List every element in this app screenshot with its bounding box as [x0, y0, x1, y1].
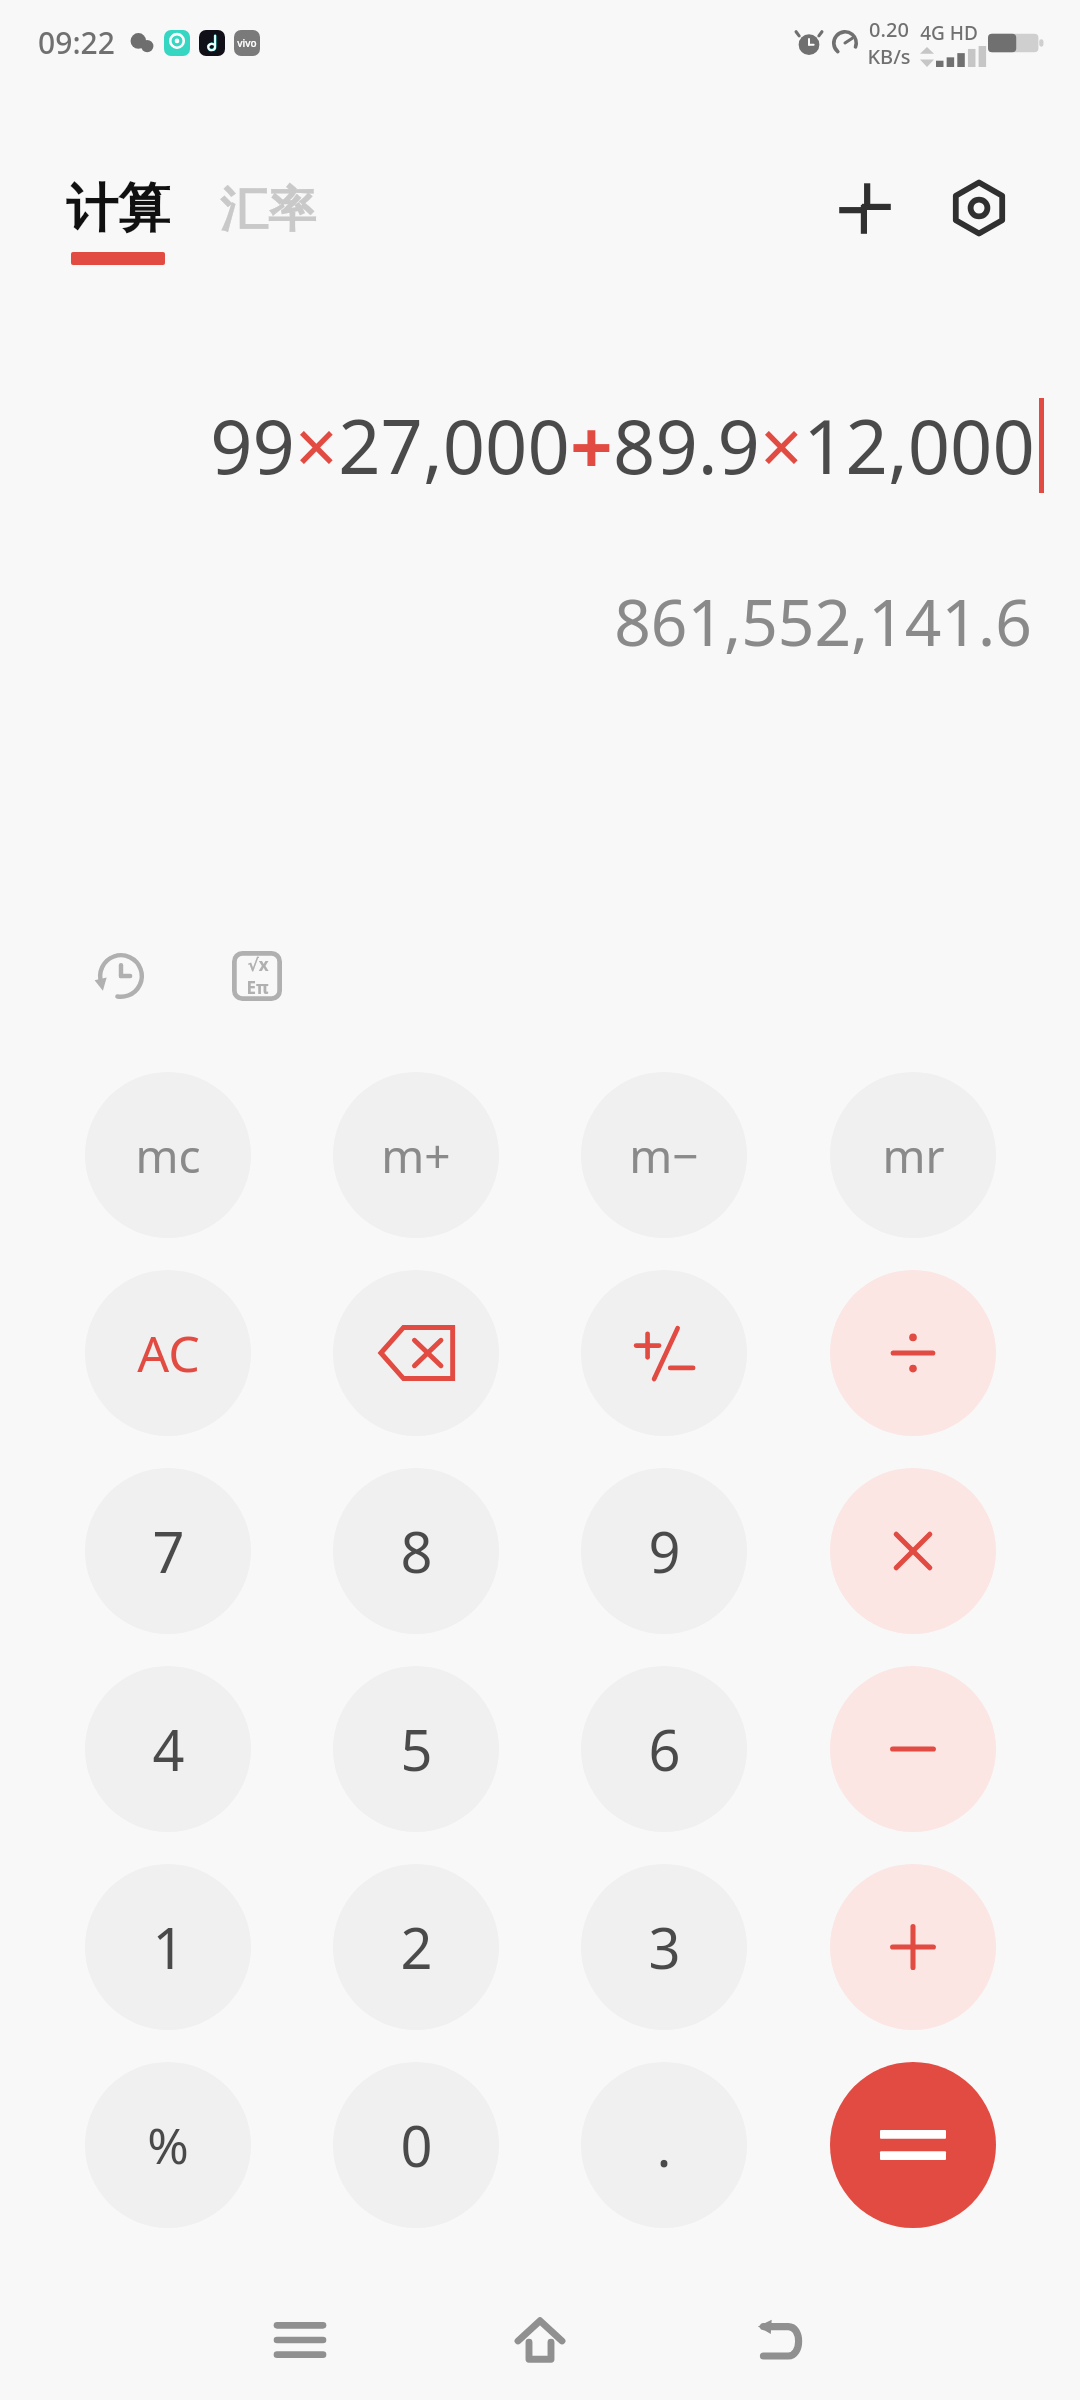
- staticText: 12,000: [803, 395, 1035, 496]
- button[interactable]: Multiply: [830, 1468, 996, 1634]
- staticText: 5: [400, 1711, 433, 1787]
- button[interactable]: Settings: [934, 163, 1024, 253]
- button[interactable]: 0: [333, 2062, 499, 2228]
- staticText: Eπ: [246, 976, 269, 999]
- staticText: 7: [152, 1513, 185, 1589]
- button[interactable]: m+: [333, 1072, 499, 1238]
- staticText: 8: [400, 1513, 433, 1589]
- button[interactable]: 计算: [66, 176, 170, 265]
- button[interactable]: .: [581, 2062, 747, 2228]
- button[interactable]: Backspace: [333, 1270, 499, 1436]
- button[interactable]: %: [85, 2062, 251, 2228]
- button[interactable]: 8: [333, 1468, 499, 1634]
- staticText: 1: [152, 1909, 185, 1985]
- button[interactable]: Subtract: [830, 1666, 996, 1832]
- staticText: 3: [648, 1909, 681, 1985]
- button[interactable]: History: [80, 935, 162, 1017]
- button[interactable]: 3: [581, 1864, 747, 2030]
- button[interactable]: Home: [465, 2285, 615, 2395]
- button[interactable]: Equals: [830, 2062, 996, 2228]
- button[interactable]: 2: [333, 1864, 499, 2030]
- button[interactable]: 汇率: [220, 180, 316, 240]
- staticText: 99: [210, 395, 295, 496]
- button[interactable]: 4: [85, 1666, 251, 1832]
- button[interactable]: mc: [85, 1072, 251, 1238]
- staticText: AC: [137, 1319, 200, 1387]
- staticText: 2: [400, 1909, 433, 1985]
- button[interactable]: Divide: [830, 1270, 996, 1436]
- staticText: √x: [247, 953, 269, 976]
- staticText: 09:22: [38, 22, 115, 63]
- staticText: 861,552,141.6: [614, 578, 1032, 665]
- button[interactable]: 7: [85, 1468, 251, 1634]
- staticText: 9: [648, 1513, 681, 1589]
- staticText: 89.9: [613, 395, 760, 496]
- button[interactable]: Scientific mode: [216, 935, 298, 1017]
- button[interactable]: Back: [705, 2285, 855, 2395]
- staticText: 6: [648, 1711, 681, 1787]
- staticText: KB/s: [867, 43, 911, 70]
- staticText: %: [147, 2111, 189, 2179]
- staticText: mr: [882, 1124, 945, 1187]
- button[interactable]: 1: [85, 1864, 251, 2030]
- button[interactable]: Collapse keypad: [820, 163, 910, 253]
- button[interactable]: Add: [830, 1864, 996, 2030]
- button[interactable]: mr: [830, 1072, 996, 1238]
- button[interactable]: m−: [581, 1072, 747, 1238]
- staticText: 4G HD: [920, 20, 978, 46]
- button[interactable]: 9: [581, 1468, 747, 1634]
- staticText: 0: [400, 2107, 433, 2183]
- button[interactable]: Recent apps: [225, 2285, 375, 2395]
- button[interactable]: AC: [85, 1270, 251, 1436]
- staticText: vivo: [237, 36, 257, 50]
- staticText: m−: [629, 1124, 699, 1187]
- staticText: 计算: [66, 176, 170, 242]
- staticText: mc: [135, 1124, 201, 1187]
- staticText: m+: [381, 1124, 451, 1187]
- staticText: 27,000: [338, 395, 570, 496]
- button[interactable]: 5: [333, 1666, 499, 1832]
- staticText: 4: [152, 1711, 185, 1787]
- staticText: 0.20: [869, 16, 909, 43]
- staticText: 汇率: [220, 180, 316, 240]
- button[interactable]: 6: [581, 1666, 747, 1832]
- button[interactable]: Toggle sign: [581, 1270, 747, 1436]
- staticText: +: [570, 395, 613, 496]
- staticText: ×: [760, 395, 803, 496]
- staticText: ×: [295, 395, 338, 496]
- staticText: .: [656, 2107, 672, 2183]
